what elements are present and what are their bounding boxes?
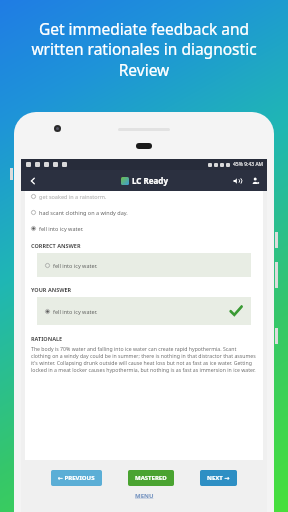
staticText: had scant clothing on a windy day. <box>39 209 128 216</box>
staticText: NEXT → <box>207 474 230 482</box>
staticText: fell into icy water. <box>53 308 98 315</box>
staticText: MASTERED <box>135 474 167 482</box>
button[interactable]: fell into icy water. <box>31 225 257 232</box>
staticText: fell into icy water. <box>53 262 98 269</box>
staticText: RATIONALE <box>31 335 63 342</box>
button[interactable]: had scant clothing on a windy day. <box>31 209 257 216</box>
button[interactable]: MASTERED <box>128 470 174 486</box>
staticText: The body is 70% water and falling into i… <box>31 345 257 373</box>
staticText: fell into icy water. <box>39 225 84 232</box>
button[interactable]: get soaked in a rainstorm. <box>31 193 257 200</box>
staticText: ← PREVIOUS <box>58 474 95 482</box>
button[interactable]: Sound <box>230 174 244 188</box>
staticText: 45% 9:43 AM <box>233 161 264 168</box>
staticText: LC Ready <box>132 175 168 186</box>
button[interactable]: MENU <box>133 490 156 502</box>
button[interactable]: ← PREVIOUS <box>51 470 102 486</box>
staticText: Get immediate feedback and written ratio… <box>31 18 257 81</box>
button[interactable]: Account <box>249 174 263 188</box>
staticText: get soaked in a rainstorm. <box>39 193 107 200</box>
staticText: YOUR ANSWER <box>31 286 72 293</box>
button[interactable]: Back <box>25 173 41 189</box>
staticText: CORRECT ANSWER <box>31 242 81 249</box>
button[interactable]: NEXT → <box>200 470 237 486</box>
staticText: MENU <box>135 492 154 500</box>
